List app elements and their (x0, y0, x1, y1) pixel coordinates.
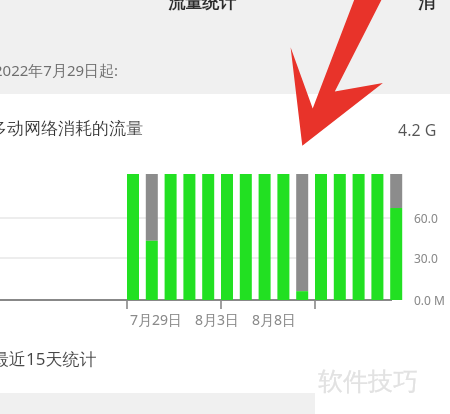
staticText: 30.0 (414, 250, 438, 266)
staticText: 最近15天统计 (0, 347, 97, 370)
staticText: 60.0 (414, 210, 438, 226)
staticText: 流量统计 (168, 0, 236, 13)
staticText: 7月29日 (130, 310, 183, 329)
button[interactable]: 流量统计 (168, 0, 236, 13)
staticText: 4.2 G (398, 119, 437, 141)
staticText: 软件技巧 (318, 366, 418, 397)
button[interactable]: 消 (418, 0, 435, 13)
staticText: 2022年7月29日起: (0, 60, 119, 80)
staticText: 消 (418, 0, 435, 13)
staticText: 8月8日 (252, 310, 297, 329)
staticText: 8月3日 (195, 310, 240, 329)
other: Annotation arrow pointing down (262, 0, 392, 156)
staticText: 多动网络消耗的流量 (0, 118, 143, 139)
button[interactable]: 多动网络消耗的流量 (0, 94, 450, 160)
staticText: 0.0 M (414, 292, 445, 308)
